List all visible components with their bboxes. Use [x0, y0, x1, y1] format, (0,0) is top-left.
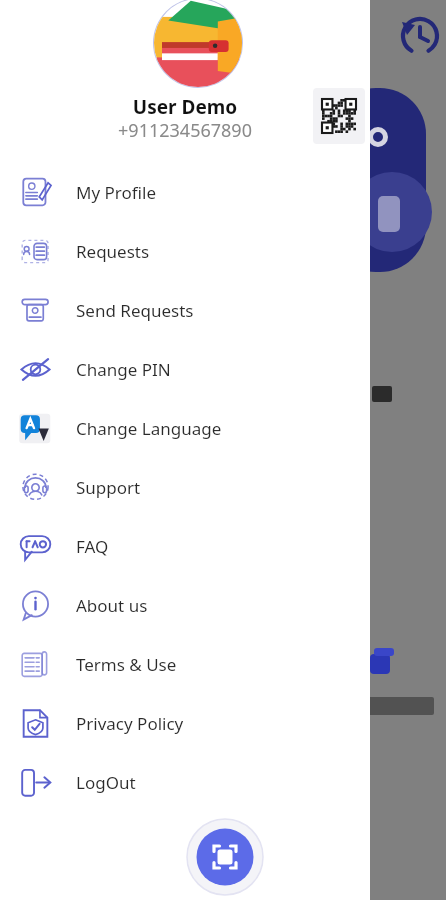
- button[interactable]: Change Language: [0, 399, 370, 458]
- button[interactable]: Profile picture: [153, 0, 243, 88]
- staticText: Privacy Policy: [76, 712, 184, 735]
- staticText: My Profile: [76, 181, 156, 204]
- button[interactable]: My Profile: [0, 163, 370, 222]
- staticText: Terms & Use: [76, 653, 177, 676]
- staticText: About us: [76, 594, 148, 617]
- staticText: Change Language: [76, 417, 222, 440]
- button[interactable]: Terms & Use: [0, 635, 370, 694]
- staticText: Support: [76, 476, 141, 499]
- button[interactable]: Scan QR code: [186, 818, 264, 896]
- button[interactable]: FAQ: [0, 517, 370, 576]
- button[interactable]: Requests: [0, 222, 370, 281]
- staticText: +911234567890: [0, 118, 370, 143]
- staticText: User Demo: [0, 94, 370, 120]
- button[interactable]: About us: [0, 576, 370, 635]
- staticText: Send Requests: [76, 299, 194, 322]
- button[interactable]: LogOut: [0, 753, 370, 812]
- button[interactable]: Send Requests: [0, 281, 370, 340]
- staticText: Requests: [76, 240, 150, 263]
- staticText: FAQ: [76, 535, 109, 558]
- button[interactable]: Support: [0, 458, 370, 517]
- button[interactable]: Show QR code: [313, 88, 365, 144]
- staticText: Change PIN: [76, 358, 171, 381]
- button[interactable]: Privacy Policy: [0, 694, 370, 753]
- button[interactable]: Change PIN: [0, 340, 370, 399]
- staticText: LogOut: [76, 771, 136, 794]
